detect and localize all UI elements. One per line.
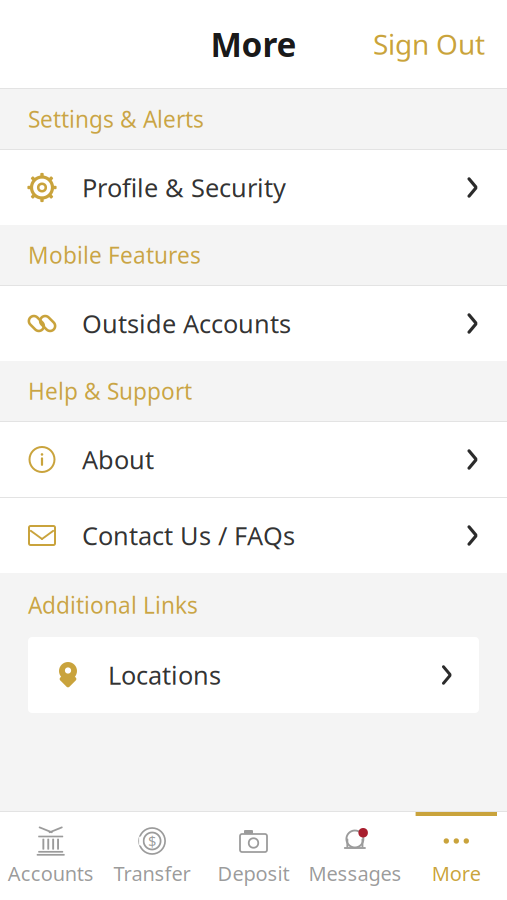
button[interactable]: Messages	[304, 812, 406, 900]
button[interactable]: Profile & Security	[0, 150, 507, 225]
staticText: Additional Links	[28, 590, 198, 620]
staticText: Sign Out	[373, 25, 485, 63]
staticText: Messages	[308, 860, 401, 887]
staticText: Profile & Security	[82, 171, 286, 204]
button[interactable]: Outside Accounts	[0, 286, 507, 361]
staticText: Mobile Features	[28, 240, 201, 270]
button[interactable]: $	[101, 812, 203, 900]
staticText: Deposit	[217, 860, 289, 887]
button[interactable]: Contact Us / FAQs	[0, 498, 507, 573]
staticText: Settings & Alerts	[28, 104, 204, 134]
staticText: Contact Us / FAQs	[82, 519, 295, 552]
button[interactable]: About	[0, 422, 507, 497]
staticText: About	[82, 443, 154, 476]
staticText: Outside Accounts	[82, 307, 291, 340]
button[interactable]: Deposit	[203, 812, 304, 900]
staticText: Accounts	[8, 860, 94, 887]
staticText: $	[148, 831, 156, 851]
button[interactable]: Sign Out	[351, 13, 507, 75]
staticText: Locations	[108, 658, 221, 692]
staticText: Help & Support	[28, 376, 192, 406]
staticText: Transfer	[114, 860, 191, 887]
staticText: More	[432, 860, 481, 887]
staticText: More	[210, 22, 296, 66]
button[interactable]: Locations	[28, 637, 479, 713]
button[interactable]: More	[406, 812, 507, 900]
button[interactable]: Accounts	[0, 812, 101, 900]
